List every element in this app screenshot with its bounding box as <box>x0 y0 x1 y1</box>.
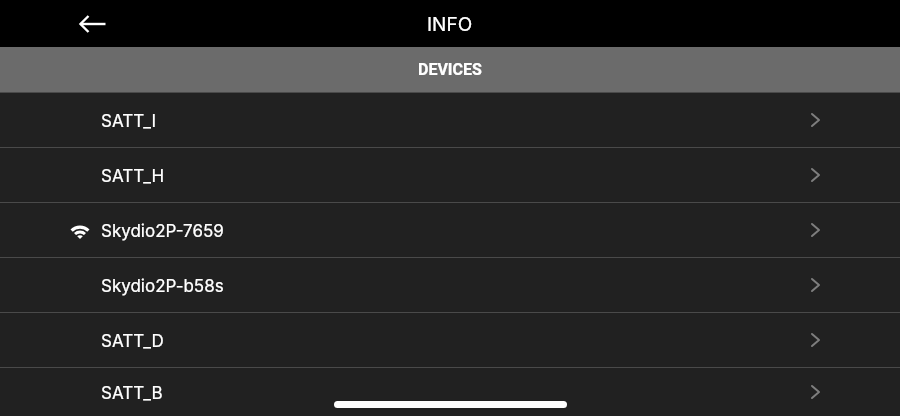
button[interactable]: SATT_D <box>0 312 900 367</box>
button[interactable]: Skydio2P-b58s <box>0 257 900 312</box>
staticText: SATT_B <box>101 383 163 404</box>
staticText: INFO <box>427 13 473 36</box>
button[interactable]: SATT_H <box>0 147 900 202</box>
button[interactable]: Back <box>73 4 113 44</box>
staticText: Skydio2P-b58s <box>101 276 224 297</box>
button[interactable]: Skydio2P-7659 <box>0 202 900 257</box>
staticText: Skydio2P-7659 <box>101 221 224 242</box>
button[interactable]: SATT_I <box>0 92 900 147</box>
staticText: SATT_I <box>101 111 157 132</box>
staticText: SATT_D <box>101 331 164 352</box>
staticText: SATT_H <box>101 166 165 187</box>
staticText: DEVICES <box>418 60 482 79</box>
button[interactable]: SATT_B <box>0 367 900 416</box>
